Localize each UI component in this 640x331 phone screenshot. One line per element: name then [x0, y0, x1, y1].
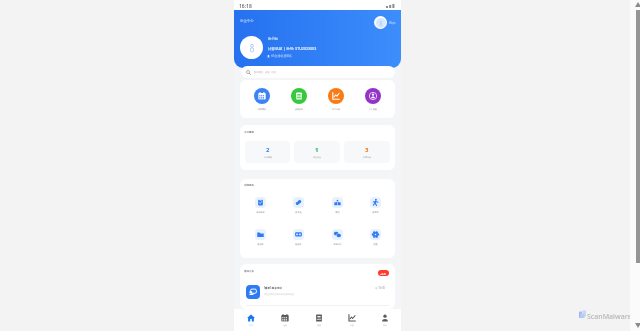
button[interactable]: 校园卡	[283, 229, 313, 246]
staticText: 体育馆	[372, 211, 379, 214]
button[interactable]: 图书	[322, 197, 352, 214]
staticText: 综合排名第8名	[271, 54, 292, 58]
staticText: 我的	[383, 324, 387, 326]
button[interactable]: 学习分析	[321, 88, 351, 111]
button[interactable]: 3条新	[378, 270, 389, 276]
button[interactable]: 奖学金	[283, 197, 313, 214]
staticText: 计算机AI | 学号: STU2023003	[268, 46, 317, 51]
button[interactable]: 2	[245, 141, 290, 163]
staticText: 今日概览	[244, 131, 254, 134]
button[interactable]: 3	[344, 141, 390, 163]
staticText: 消息中心	[333, 243, 342, 246]
staticText: 2	[266, 146, 270, 154]
staticText: 请各位同学注意期末考试时间安排	[264, 293, 294, 296]
staticText: 资料库	[257, 243, 264, 246]
button[interactable]: 搜索课程、成绩、活动	[241, 66, 395, 78]
staticText: 成绩	[317, 324, 321, 326]
staticText: 待交作业	[313, 156, 321, 159]
staticText: 通知公告	[244, 270, 254, 273]
staticText: 设置	[373, 243, 378, 246]
staticText: 张小明	[268, 37, 278, 41]
staticText: 16:18	[239, 3, 252, 10]
button[interactable]: 成绩查询	[284, 88, 314, 111]
button[interactable]: 请假申请	[245, 197, 275, 214]
button[interactable]: 资料库	[245, 229, 275, 246]
staticText: 本周活动	[363, 156, 371, 159]
staticText: 3条新	[380, 272, 387, 275]
staticText: 3	[365, 146, 369, 154]
button[interactable]: [重要] 期末考试	[246, 282, 389, 300]
staticText: 校园卡	[295, 243, 302, 246]
button[interactable]: 1	[294, 141, 340, 163]
button[interactable]: 设置	[360, 229, 390, 246]
button[interactable]: 首页	[234, 309, 268, 331]
staticText: 功能服务	[244, 184, 254, 187]
button[interactable]: 我的课表	[247, 88, 277, 111]
button[interactable]: 我的	[368, 309, 401, 331]
staticText: 今日课程	[264, 156, 272, 159]
staticText: 请假申请	[256, 211, 265, 214]
button[interactable]: 课表	[268, 309, 302, 331]
button[interactable]: 体育馆	[360, 197, 390, 214]
staticText: 分析	[350, 324, 354, 326]
button[interactable]: 消息中心	[322, 229, 352, 246]
button[interactable]: 成绩	[302, 309, 335, 331]
staticText: 1	[315, 146, 319, 154]
staticText: 我的课表	[258, 108, 266, 111]
staticText: 我的	[389, 21, 396, 25]
staticText: 搜索课程、成绩、活动	[254, 71, 276, 74]
staticText: 首页	[249, 324, 253, 326]
staticText: 今 10:30	[375, 286, 385, 290]
staticText: 成绩查询	[295, 108, 303, 111]
button[interactable]: 分析	[335, 309, 368, 331]
staticText: 个人档案	[369, 108, 377, 111]
staticText: 学习分析	[332, 108, 340, 111]
staticText: ScanMalware	[587, 312, 632, 322]
button[interactable]: My profile	[374, 16, 396, 29]
staticText: 课表	[283, 324, 287, 326]
button[interactable]: 个人档案	[358, 88, 388, 111]
staticText: 奖学金	[295, 211, 302, 214]
staticText: 学生中心	[240, 19, 254, 23]
staticText: [重要] 期末考试	[264, 286, 282, 290]
staticText: 图书	[335, 211, 340, 214]
